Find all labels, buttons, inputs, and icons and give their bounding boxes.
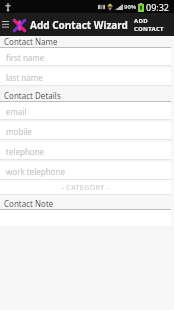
button[interactable]: Open navigation drawer <box>0 13 11 36</box>
staticText: email <box>6 106 27 117</box>
button[interactable]: work telephone <box>0 162 171 180</box>
button[interactable]: - CATEGORY - <box>0 180 171 195</box>
staticText: 90% <box>124 3 137 11</box>
staticText: Contact Details <box>4 90 61 101</box>
button[interactable]: last name <box>0 68 171 86</box>
staticText: 09:32 <box>146 1 170 13</box>
staticText: ADD CONTACT <box>134 17 168 33</box>
staticText: Add Contact Wizard <box>30 18 128 32</box>
staticText: mobile <box>6 126 32 137</box>
staticText: telephone <box>6 146 45 157</box>
staticText: - CATEGORY - <box>61 183 110 193</box>
staticText: last name <box>6 72 43 83</box>
staticText: Contact Note <box>4 198 54 209</box>
button[interactable]: email <box>0 102 171 120</box>
staticText: first name <box>6 52 45 63</box>
button[interactable]: mobile <box>0 122 171 140</box>
button[interactable]: telephone <box>0 142 171 160</box>
button[interactable]: first name <box>0 48 171 66</box>
staticText: work telephone <box>6 166 65 177</box>
button[interactable]: ADD CONTACT <box>128 13 174 36</box>
staticText: Contact Name <box>4 36 58 47</box>
